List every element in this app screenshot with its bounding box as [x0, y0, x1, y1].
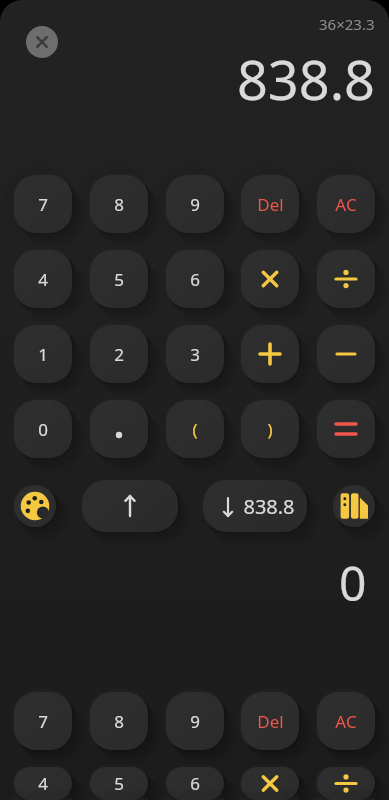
- staticText: 2: [114, 343, 124, 366]
- button[interactable]: 6: [166, 250, 224, 308]
- staticText: 4: [38, 268, 48, 291]
- button[interactable]: 0: [14, 400, 72, 458]
- button[interactable]: ): [241, 400, 299, 458]
- staticText: 3: [190, 343, 200, 366]
- button[interactable]: 838.8: [203, 480, 307, 532]
- staticText: 0: [339, 550, 367, 615]
- staticText: 9: [190, 193, 200, 216]
- staticText: 4: [38, 772, 48, 795]
- staticText: AC: [335, 710, 357, 733]
- button[interactable]: Colour swatches: [333, 485, 375, 527]
- button[interactable]: 9: [166, 692, 224, 750]
- button[interactable]: 5: [90, 250, 148, 308]
- staticText: 5: [114, 772, 124, 795]
- staticText: 838.8: [236, 42, 375, 116]
- staticText: (: [192, 418, 198, 441]
- button[interactable]: 7: [14, 692, 72, 750]
- staticText: 6: [190, 772, 200, 795]
- button[interactable]: operator: [241, 250, 299, 308]
- staticText: 838.8: [243, 493, 295, 520]
- button[interactable]: 9: [166, 175, 224, 233]
- button[interactable]: operator: [241, 325, 299, 383]
- staticText: 7: [38, 710, 48, 733]
- button[interactable]: AC: [317, 692, 375, 750]
- button[interactable]: 5: [90, 767, 148, 800]
- button[interactable]: 1: [14, 325, 72, 383]
- staticText: 36×23.3: [319, 14, 375, 34]
- button[interactable]: 4: [14, 767, 72, 800]
- button[interactable]: AC: [317, 175, 375, 233]
- staticText: 5: [114, 268, 124, 291]
- button[interactable]: Close: [26, 26, 58, 58]
- staticText: 9: [190, 710, 200, 733]
- button[interactable]: Del: [241, 175, 299, 233]
- button[interactable]: 2: [90, 325, 148, 383]
- button[interactable]: Del: [241, 692, 299, 750]
- staticText: 6: [190, 268, 200, 291]
- button[interactable]: operator: [317, 767, 375, 800]
- button[interactable]: Theme palette: [14, 485, 56, 527]
- button[interactable]: operator: [317, 325, 375, 383]
- staticText: 7: [38, 193, 48, 216]
- button[interactable]: 8: [90, 692, 148, 750]
- staticText: 8: [114, 710, 124, 733]
- button[interactable]: operator: [90, 400, 148, 458]
- staticText: AC: [335, 193, 357, 216]
- button[interactable]: 3: [166, 325, 224, 383]
- button[interactable]: operator: [317, 250, 375, 308]
- staticText: 1: [38, 343, 48, 366]
- button[interactable]: operator: [317, 400, 375, 458]
- button[interactable]: 6: [166, 767, 224, 800]
- staticText: Del: [257, 710, 284, 733]
- staticText: Del: [257, 193, 284, 216]
- button[interactable]: 7: [14, 175, 72, 233]
- staticText: 8: [114, 193, 124, 216]
- staticText: ): [267, 418, 273, 441]
- button[interactable]: Move up: [82, 480, 178, 532]
- button[interactable]: (: [166, 400, 224, 458]
- button[interactable]: 4: [14, 250, 72, 308]
- button[interactable]: operator: [241, 767, 299, 800]
- staticText: 0: [38, 418, 48, 441]
- button[interactable]: 8: [90, 175, 148, 233]
